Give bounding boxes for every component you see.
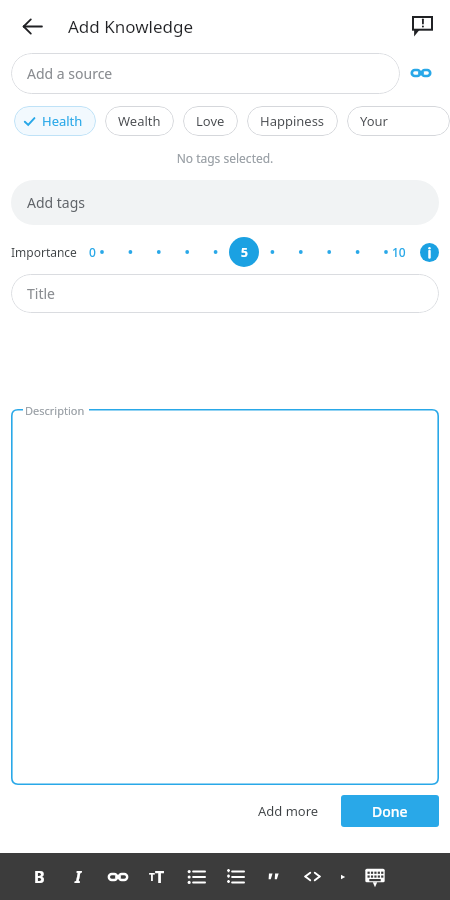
- staticText: Wealth: [118, 112, 161, 130]
- staticText: T: [149, 870, 155, 884]
- staticText: Importance: [11, 244, 77, 260]
- staticText: Description: [25, 403, 85, 418]
- button[interactable]: Add tags: [11, 180, 439, 225]
- button[interactable]: Health: [14, 106, 96, 136]
- staticText: Done: [372, 802, 408, 821]
- button[interactable]: Importance info: [416, 239, 442, 265]
- staticText: 0: [89, 244, 96, 260]
- button[interactable]: Title: [11, 274, 439, 313]
- button[interactable]: Description: [11, 409, 439, 785]
- staticText: I: [75, 866, 82, 888]
- button[interactable]: Back: [12, 6, 52, 46]
- button[interactable]: Wealth: [105, 106, 174, 136]
- button[interactable]: More options: [332, 866, 354, 888]
- button[interactable]: Bold: [20, 857, 59, 896]
- staticText: Title: [27, 284, 55, 303]
- button[interactable]: Add more: [246, 795, 331, 827]
- staticText: Add tags: [27, 193, 86, 212]
- staticText: Your Custom C: [360, 112, 437, 130]
- button[interactable]: Code: [293, 857, 332, 896]
- button[interactable]: Bulleted list: [176, 857, 215, 896]
- staticText: Add a source: [27, 64, 113, 83]
- button[interactable]: Quote: [254, 857, 293, 896]
- button[interactable]: Keyboard: [358, 860, 392, 894]
- button[interactable]: Love: [183, 106, 238, 136]
- button[interactable]: 5: [96, 234, 392, 270]
- staticText: B: [34, 866, 45, 888]
- staticText: No tags selected.: [0, 150, 450, 166]
- staticText: 5: [241, 244, 248, 260]
- button[interactable]: Italic: [59, 857, 98, 896]
- staticText: Love: [196, 112, 225, 130]
- button[interactable]: Add a source: [11, 53, 400, 94]
- staticText: Happiness: [260, 112, 325, 130]
- button[interactable]: Attach link: [400, 52, 442, 94]
- staticText: 10: [392, 244, 406, 260]
- button[interactable]: Your Custom C: [347, 106, 450, 136]
- staticText: Add more: [258, 802, 319, 820]
- staticText: T: [155, 866, 165, 888]
- button[interactable]: Text size: [137, 857, 176, 896]
- button[interactable]: Happiness: [247, 106, 338, 136]
- staticText: Add Knowledge: [68, 15, 194, 38]
- button[interactable]: Send feedback: [402, 6, 442, 46]
- staticText: Health: [42, 112, 83, 130]
- button[interactable]: Insert link: [98, 857, 137, 896]
- button[interactable]: Done: [341, 795, 439, 827]
- button[interactable]: Numbered list: [215, 857, 254, 896]
